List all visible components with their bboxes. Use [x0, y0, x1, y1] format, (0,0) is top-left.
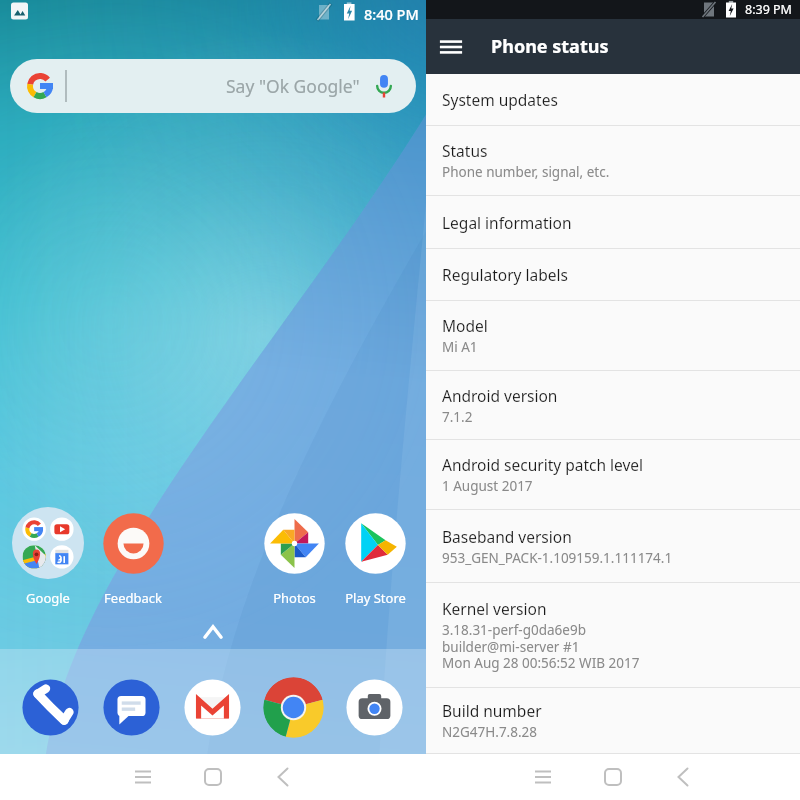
button[interactable]: Model [426, 301, 800, 371]
staticText: Photos [273, 589, 316, 607]
button[interactable]: Back [661, 755, 705, 799]
staticText: Mi A1 [442, 338, 478, 356]
staticText: Say "Ok Google" [226, 74, 360, 98]
button[interactable]: Back [261, 755, 305, 799]
staticText: Feedback [104, 589, 162, 607]
button[interactable]: Menu [436, 32, 466, 62]
staticText: Regulatory labels [442, 264, 568, 285]
button[interactable]: Gmail [182, 677, 243, 738]
button[interactable]: Baseband version [426, 510, 800, 583]
staticText: 953_GEN_PACK-1.109159.1.111174.1 [442, 549, 673, 567]
button[interactable]: Home [591, 755, 635, 799]
staticText: Model [442, 315, 488, 336]
button[interactable]: Legal information [426, 196, 800, 249]
staticText: 8:40 PM [364, 4, 419, 24]
button[interactable]: Play Store [330, 503, 420, 608]
staticText: 7.1.2 [442, 408, 473, 426]
button[interactable]: Build number [426, 688, 800, 754]
staticText: 1 August 2017 [442, 477, 533, 495]
button[interactable]: Messages [101, 677, 162, 738]
button[interactable]: Kernel version [426, 583, 800, 688]
button[interactable]: Status [426, 126, 800, 196]
button[interactable]: Android version [426, 371, 800, 440]
button[interactable]: Feedback [88, 503, 178, 608]
button[interactable]: Recents [121, 755, 165, 799]
staticText: 3.18.31-perf-g0da6e9b builder@mi-server … [442, 621, 640, 672]
staticText: Google [26, 589, 70, 607]
staticText: Phone status [491, 34, 609, 59]
staticText: Kernel version [442, 598, 547, 619]
staticText: Baseband version [442, 526, 572, 547]
button[interactable]: Say "Ok Google" [10, 59, 416, 113]
button[interactable]: Chrome [263, 677, 324, 738]
staticText: Legal information [442, 212, 572, 233]
button[interactable]: Home [191, 755, 235, 799]
staticText: Status [442, 140, 488, 161]
button[interactable]: System updates [426, 74, 800, 126]
button[interactable]: Phone [20, 677, 81, 738]
staticText: System updates [442, 89, 558, 110]
staticText: Play Store [345, 589, 406, 607]
staticText: 8:39 PM [745, 1, 792, 18]
button[interactable]: Camera [344, 677, 405, 738]
staticText: Phone number, signal, etc. [442, 163, 610, 181]
staticText: Android security patch level [442, 454, 644, 475]
button[interactable]: Android security patch level [426, 440, 800, 510]
staticText: Build number [442, 700, 542, 721]
staticText: Android version [442, 385, 558, 406]
button[interactable]: Regulatory labels [426, 249, 800, 301]
staticText: N2G47H.7.8.28 [442, 723, 537, 741]
button[interactable]: Recents [521, 755, 565, 799]
button[interactable]: Google [3, 503, 93, 608]
button[interactable]: Open app drawer [198, 618, 228, 648]
button[interactable]: Photos [249, 503, 339, 608]
